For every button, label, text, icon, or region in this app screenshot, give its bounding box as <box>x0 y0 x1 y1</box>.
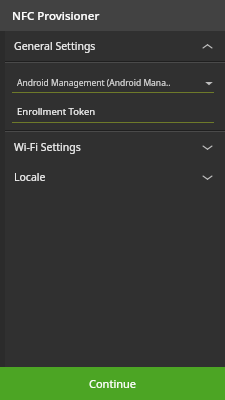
other: Expand Wi-Fi Settings <box>200 140 214 154</box>
button[interactable]: Wi-Fi Settings <box>5 132 225 162</box>
staticText: Android Management (Android Mana.. <box>17 77 204 89</box>
staticText: Locale <box>14 170 46 184</box>
staticText: Continue <box>89 376 137 391</box>
staticText: Wi-Fi Settings <box>14 140 81 154</box>
button[interactable]: Locale <box>5 162 225 192</box>
staticText: Enrollment Token <box>17 105 96 118</box>
staticText: NFC Provisioner <box>12 8 100 24</box>
staticText: General Settings <box>14 39 96 53</box>
button[interactable]: General Settings <box>5 31 225 61</box>
other: Expand Locale <box>200 170 214 184</box>
button[interactable]: Continue <box>0 367 225 400</box>
button[interactable]: Android Management (Android Mana.. <box>12 73 214 93</box>
other: Collapse General Settings <box>200 39 214 53</box>
button[interactable]: Enrollment Token <box>12 105 214 123</box>
